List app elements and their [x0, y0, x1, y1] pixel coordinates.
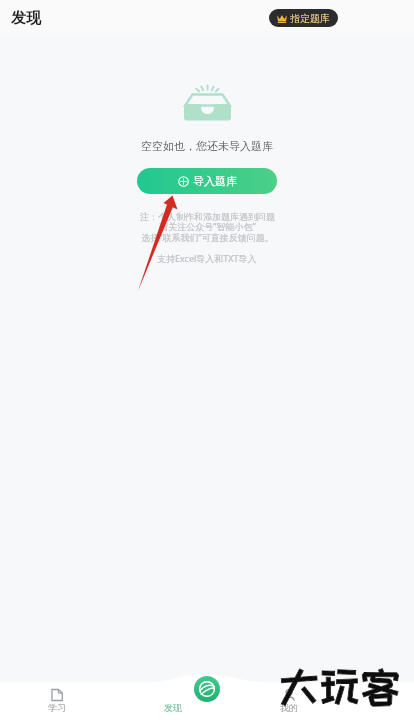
staticText: 我的 — [280, 702, 298, 713]
staticText: 导入题库 — [193, 174, 237, 188]
staticText: 注：个人制作和添加题库遇到问题 请关注公众号“智能小包” 选择“联系我们”可直接… — [140, 211, 275, 244]
button[interactable]: 指定题库 — [269, 9, 338, 27]
staticText: 发现 — [11, 9, 41, 28]
staticText: 指定题库 — [290, 12, 330, 25]
button[interactable]: 发现 — [194, 676, 220, 702]
staticText: 空空如也，您还未导入题库 — [141, 139, 273, 153]
staticText: 支持Excel导入和TXT导入 — [157, 252, 257, 264]
staticText: 发现 — [164, 702, 182, 713]
button[interactable]: 导入题库 — [137, 168, 277, 194]
staticText: 大玩客 — [279, 664, 401, 708]
staticText: 学习 — [48, 702, 66, 713]
button[interactable]: 我的 — [263, 686, 315, 713]
staticText: 大玩客 — [279, 664, 401, 708]
button[interactable]: 学习 — [31, 686, 83, 713]
button[interactable]: 发现 — [147, 686, 199, 713]
